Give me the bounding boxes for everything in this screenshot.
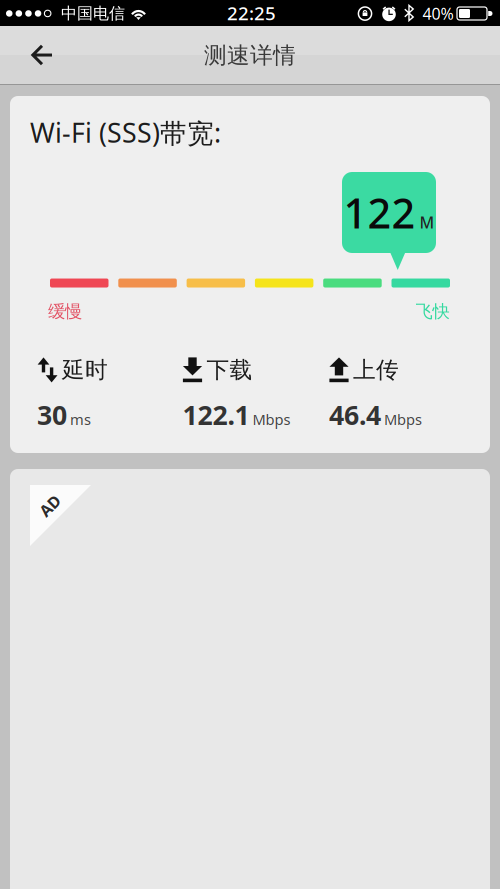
staticText: Wi-Fi (SSS)带宽: bbox=[30, 115, 221, 150]
button[interactable]: Advertisement bbox=[10, 469, 490, 889]
staticText: 飞快 bbox=[415, 301, 449, 322]
staticText: 122.1 bbox=[182, 397, 249, 432]
staticText: ms bbox=[70, 409, 91, 429]
staticText: 122 bbox=[343, 185, 415, 240]
staticText: 中国电信 bbox=[61, 4, 125, 23]
button[interactable]: Back bbox=[0, 26, 68, 85]
staticText: 下载 bbox=[206, 356, 252, 384]
staticText: 40% bbox=[422, 3, 453, 24]
staticText: 46.4 bbox=[329, 397, 381, 432]
staticText: 22:25 bbox=[227, 1, 276, 25]
staticText: 测速详情 bbox=[204, 42, 296, 69]
staticText: 缓慢 bbox=[48, 301, 82, 322]
staticText: AD bbox=[38, 495, 61, 516]
staticText: M bbox=[419, 212, 434, 233]
staticText: 上传 bbox=[353, 356, 399, 384]
staticText: 延时 bbox=[62, 356, 108, 384]
staticText: 30 bbox=[37, 397, 67, 432]
staticText: Mbps bbox=[252, 409, 290, 429]
staticText: Mbps bbox=[384, 409, 422, 429]
